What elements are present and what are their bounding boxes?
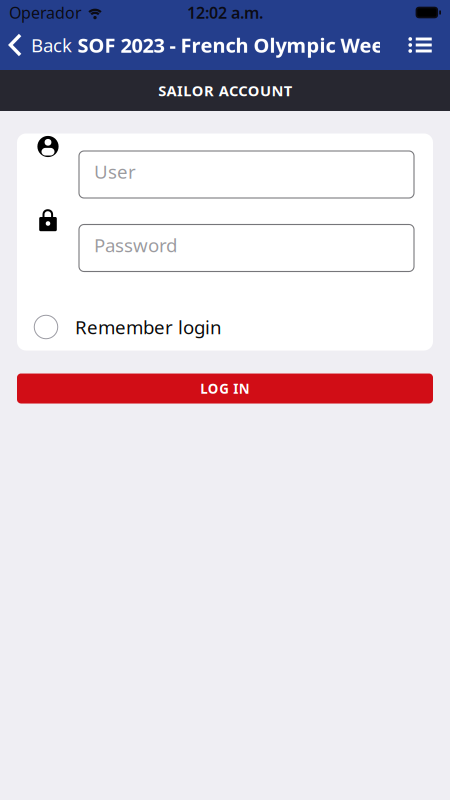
- staticText: Password: [94, 233, 177, 257]
- button[interactable]: LOG IN: [17, 373, 433, 403]
- staticText: SAILOR ACCOUNT: [158, 81, 292, 100]
- button[interactable]: Remember login: [17, 315, 433, 339]
- button[interactable]: Menu: [399, 22, 441, 67]
- button[interactable]: User: [79, 151, 414, 198]
- staticText: 12:02 a.m.: [187, 2, 263, 23]
- staticText: Back: [31, 33, 72, 57]
- staticText: SOF 2023 - French Olympic Week - Hyères: [78, 32, 450, 58]
- button[interactable]: Back: [0, 22, 72, 67]
- staticText: Remember login: [75, 315, 222, 339]
- staticText: Operador: [9, 2, 82, 23]
- staticText: LOG IN: [200, 380, 250, 397]
- staticText: User: [94, 159, 136, 184]
- button[interactable]: Password: [79, 224, 414, 271]
